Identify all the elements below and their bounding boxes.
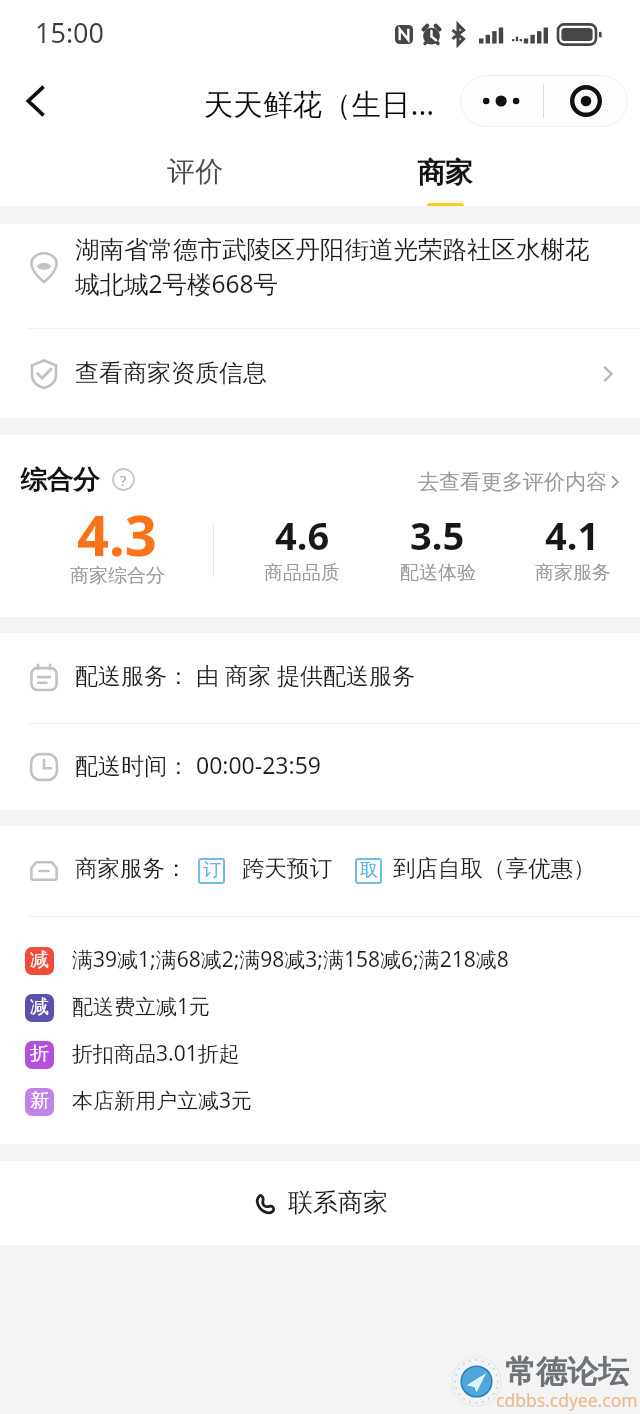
button[interactable]: 湖南省常德市武陵区丹阳街道光荣路社区水榭花城北城2号楼668号: [0, 224, 640, 328]
staticText: 满39减1;满68减2;满98减3;满158减6;满218减8: [72, 945, 509, 974]
staticText: 订: [203, 859, 221, 882]
staticText: 4.1: [545, 509, 600, 561]
staticText: 配送费立减1元: [72, 992, 211, 1021]
staticText: 商家服务: [535, 561, 611, 585]
staticText: 配送时间： 00:00-23:59: [75, 749, 321, 780]
staticText: 湖南省常德市武陵区丹阳街道光荣路社区水榭花城北城2号楼668号: [75, 234, 597, 301]
staticText: 查看商家资质信息: [75, 358, 267, 388]
staticText: 配送服务： 由 商家 提供配送服务: [75, 659, 415, 690]
staticText: ?: [120, 470, 127, 490]
staticText: 3.5: [410, 509, 465, 561]
staticText: 取: [360, 859, 378, 882]
staticText: 折: [30, 1042, 49, 1066]
staticText: cdbbs.cdyee.com: [496, 1388, 638, 1412]
staticText: 去查看更多评价内容: [418, 469, 607, 495]
button[interactable]: 评价: [120, 145, 266, 206]
staticText: 联系商家: [288, 1187, 388, 1218]
staticText: 新: [30, 1089, 49, 1113]
staticText: 天天鲜花（生日...: [204, 83, 435, 123]
staticText: 4.3: [77, 496, 157, 572]
button[interactable]: Back: [0, 68, 60, 145]
staticText: 常德论坛: [505, 1352, 629, 1391]
staticText: 商家综合分: [70, 564, 165, 588]
staticText: 减: [30, 948, 49, 972]
staticText: 15:00: [35, 14, 105, 51]
staticText: 商家服务：: [75, 854, 188, 882]
staticText: 4.6: [275, 509, 330, 561]
staticText: 配送体验: [400, 561, 476, 585]
button[interactable]: 商家: [372, 145, 518, 206]
staticText: 评价: [167, 154, 223, 189]
button[interactable]: More options: [460, 75, 543, 127]
staticText: 折扣商品3.01折起: [72, 1039, 240, 1068]
button[interactable]: 查看商家资质信息: [0, 329, 640, 418]
button[interactable]: Close mini program: [544, 75, 628, 127]
staticText: 综合分: [20, 463, 100, 496]
button[interactable]: 联系商家: [233, 1178, 408, 1229]
staticText: 到店自取（享优惠）: [393, 854, 596, 882]
staticText: 商家: [417, 155, 473, 190]
staticText: 跨天预订: [242, 854, 332, 882]
staticText: 本店新用户立减3元: [72, 1086, 253, 1115]
staticText: 商品品质: [264, 561, 340, 585]
staticText: 减: [30, 995, 49, 1019]
button[interactable]: 去查看更多评价内容: [418, 469, 623, 495]
